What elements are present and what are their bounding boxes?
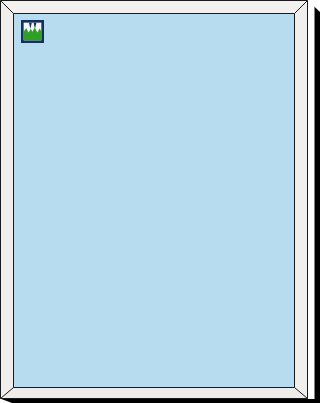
button[interactable]: Framed image placeholder — [0, 0, 320, 403]
